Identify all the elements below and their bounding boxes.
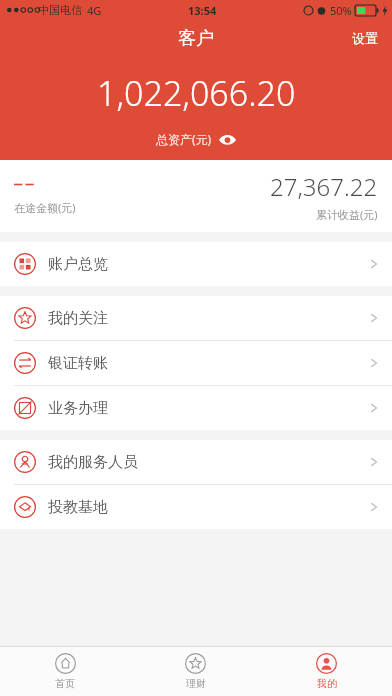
staticText: 50% <box>330 3 352 18</box>
button[interactable]: 投教基地 <box>0 485 392 529</box>
staticText: 我的关注 <box>48 309 108 328</box>
staticText: 客户 <box>178 27 214 50</box>
staticText: 4G <box>87 3 102 18</box>
staticText: 在途金额(元) <box>14 200 76 215</box>
staticText: 银证转账 <box>48 354 108 373</box>
button[interactable]: 首页 <box>0 648 130 695</box>
button[interactable]: 我的关注 <box>0 296 392 340</box>
button[interactable]: 理财 <box>130 648 261 695</box>
staticText: 账户总览 <box>48 255 108 274</box>
staticText: 投教基地 <box>48 498 108 517</box>
button[interactable]: 总资产(元) <box>146 128 246 150</box>
staticText: 累计收益(元) <box>316 207 378 222</box>
button[interactable]: 我的 <box>261 648 392 695</box>
button[interactable]: 我的服务人员 <box>0 440 392 484</box>
button[interactable]: 银证转账 <box>0 341 392 385</box>
staticText: 总资产(元) <box>156 131 212 147</box>
staticText: 首页 <box>55 677 75 690</box>
button[interactable]: 业务办理 <box>0 386 392 430</box>
staticText: 业务办理 <box>48 399 108 418</box>
staticText: 理财 <box>186 677 206 690</box>
staticText: 我的服务人员 <box>48 453 138 472</box>
staticText: 1,022,066.20 <box>97 70 296 116</box>
staticText: 13:54 <box>188 3 217 18</box>
staticText: 我的 <box>317 677 337 690</box>
staticText: 27,367.22 <box>270 170 378 203</box>
staticText: 中国电信 <box>38 3 82 17</box>
staticText: 设置 <box>352 30 378 46</box>
button[interactable]: 设置 <box>338 22 392 54</box>
button[interactable]: 账户总览 <box>0 242 392 286</box>
